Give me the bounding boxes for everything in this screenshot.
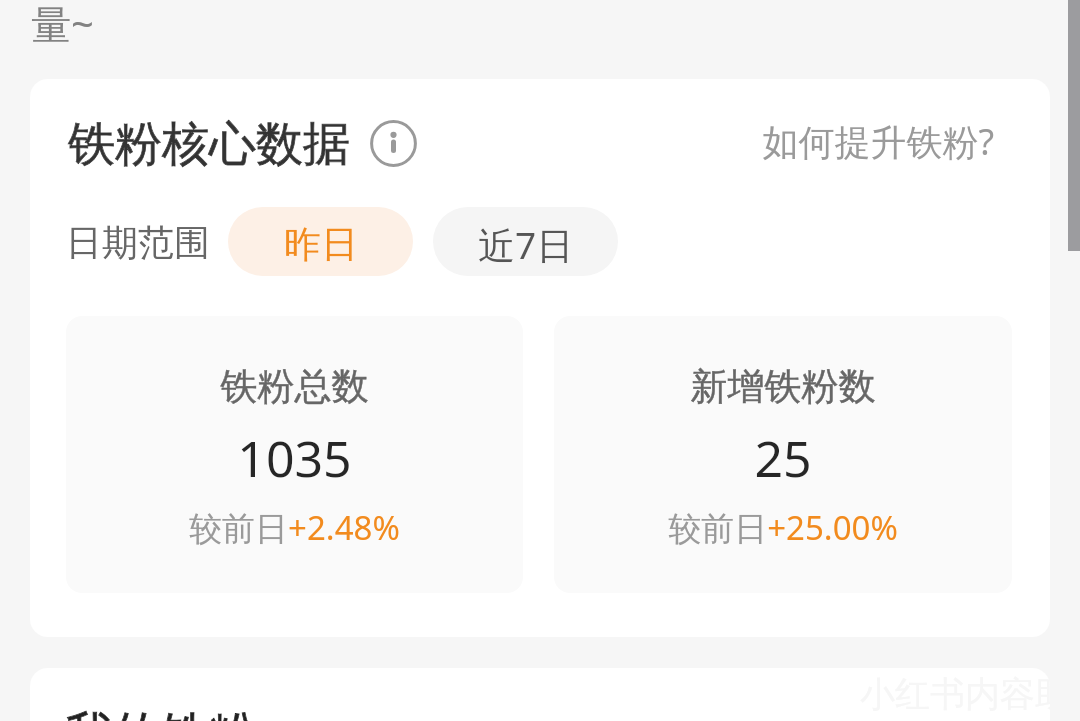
staticText: 新增铁粉数	[554, 363, 1012, 410]
staticText: 铁粉总数	[66, 363, 523, 410]
staticText: 小红书内容助手	[860, 672, 1050, 716]
staticText: 较前日+25.00%	[554, 505, 1012, 550]
staticText: 我的铁粉	[65, 705, 325, 721]
staticText: 近7日	[478, 219, 574, 270]
staticText: 较前日+2.48%	[66, 505, 523, 550]
staticText: 新增铁粉数	[554, 363, 1012, 410]
staticText: 量~	[31, 0, 94, 51]
button[interactable]: 铁粉总数	[66, 316, 523, 593]
staticText: 25	[554, 424, 1012, 492]
button[interactable]: 如何提升铁粉?	[730, 117, 994, 166]
button[interactable]: 铁粉核心数据说明	[369, 119, 417, 167]
staticText: 日期范围	[66, 220, 210, 265]
staticText: 铁粉核心数据	[68, 115, 368, 174]
button[interactable]: 昨日	[228, 207, 413, 276]
staticText: 铁粉总数	[66, 363, 523, 410]
staticText: 我的铁粉	[65, 705, 325, 721]
staticText: 如何提升铁粉?	[730, 117, 994, 166]
staticText: 昨日	[284, 221, 358, 268]
button[interactable]: 新增铁粉数	[554, 316, 1012, 593]
button[interactable]: 近7日	[433, 207, 618, 276]
staticText: 铁粉核心数据	[68, 115, 368, 174]
button[interactable]: 我的铁粉	[30, 668, 1050, 721]
staticText: 1035	[66, 424, 523, 492]
